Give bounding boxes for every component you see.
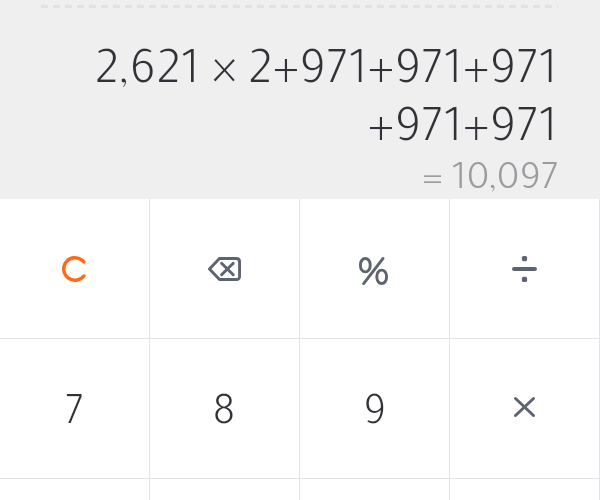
- button[interactable]: Divide: [450, 199, 599, 338]
- button[interactable]: Percent: [300, 199, 449, 338]
- other: Clear: [62, 256, 88, 282]
- button[interactable]: Backspace: [150, 199, 299, 338]
- staticText: 2,621 × 2+971+971+971 +971+971: [94, 49, 558, 158]
- staticText: 7: [65, 395, 84, 439]
- button[interactable]: 9: [300, 339, 449, 478]
- button[interactable]: 7: [0, 339, 149, 478]
- other: Percent: [359, 257, 388, 285]
- staticText: = 10,097: [422, 162, 558, 199]
- other: Multiply: [514, 397, 535, 417]
- staticText: 9: [363, 395, 387, 439]
- button[interactable]: Clear: [0, 199, 149, 338]
- button[interactable]: 8: [150, 339, 299, 478]
- staticText: 8: [212, 395, 237, 439]
- other: Divide: [512, 256, 537, 282]
- button[interactable]: Multiply: [450, 339, 599, 478]
